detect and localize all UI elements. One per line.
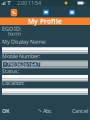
staticText: EGO ID: (2, 25, 21, 32)
staticText: 2.00 11:54 (17, 0, 41, 7)
staticText: hxrm (8, 30, 21, 37)
staticText: Location: (2, 79, 24, 87)
button[interactable]: Abc (38, 106, 52, 116)
staticText: +79036261647 (4, 61, 40, 68)
staticText: Abc (43, 107, 52, 115)
button[interactable]: +79036261647 (2, 60, 88, 68)
button[interactable]: Cancel (64, 106, 90, 116)
button[interactable] (2, 75, 88, 81)
button[interactable]: Messages (69, 10, 75, 15)
button[interactable]: Calls (11, 9, 17, 16)
staticText: Status: (2, 68, 19, 75)
staticText: My Profile (28, 17, 62, 26)
staticText: OK (2, 107, 10, 115)
button[interactable]: Messages (43, 10, 49, 15)
button[interactable] (2, 88, 88, 95)
button[interactable]: OK (0, 106, 26, 116)
staticText: My Display Name: (2, 38, 46, 45)
button[interactable] (2, 47, 88, 54)
staticText: Cancel (72, 107, 88, 115)
staticText: Mobile Number: (2, 53, 40, 60)
